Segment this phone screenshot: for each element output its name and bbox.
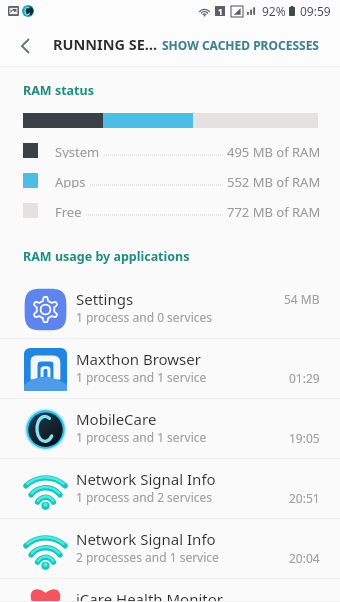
staticText: RAM usage by applications bbox=[23, 248, 190, 265]
staticText: 20:51 bbox=[289, 490, 320, 506]
button[interactable]: iCare Health Monitor bbox=[0, 579, 340, 602]
button[interactable]: Maxthon Browser bbox=[0, 339, 340, 399]
staticText: Network Signal Info bbox=[76, 529, 216, 549]
staticText: 1 process and 0 services bbox=[76, 309, 213, 325]
button[interactable]: Navigate up bbox=[13, 34, 37, 58]
staticText: Network Signal Info bbox=[76, 469, 216, 489]
staticText: 495 MB of RAM bbox=[227, 143, 321, 158]
staticText: 552 MB of RAM bbox=[227, 173, 321, 188]
staticText: 01:29 bbox=[289, 370, 320, 386]
staticText: 1 bbox=[218, 6, 223, 16]
button[interactable]: Settings bbox=[0, 279, 340, 339]
staticText: iCare Health Monitor bbox=[76, 589, 223, 602]
staticText: Free bbox=[55, 203, 82, 218]
button[interactable]: Network Signal Info bbox=[0, 519, 340, 579]
staticText: MobileCare bbox=[76, 409, 157, 429]
staticText: System bbox=[55, 143, 100, 158]
staticText: 772 MB of RAM bbox=[227, 203, 321, 218]
staticText: 20:04 bbox=[289, 550, 320, 566]
staticText: RUNNING SE… bbox=[53, 34, 158, 54]
button[interactable]: MobileCare bbox=[0, 399, 340, 459]
staticText: 19:05 bbox=[289, 430, 320, 446]
button[interactable]: SHOW CACHED PROCESSES bbox=[162, 37, 319, 53]
staticText: SHOW CACHED PROCESSES bbox=[162, 37, 319, 53]
staticText: 1 process and 1 service bbox=[76, 429, 207, 445]
staticText: 54 MB bbox=[284, 291, 320, 307]
staticText: Settings bbox=[76, 289, 134, 309]
button[interactable]: Network Signal Info bbox=[0, 459, 340, 519]
staticText: 92% bbox=[262, 3, 286, 19]
staticText: Maxthon Browser bbox=[76, 349, 201, 369]
staticText: 1 process and 2 services bbox=[76, 489, 213, 505]
staticText: Apps bbox=[55, 173, 86, 188]
staticText: RAM status bbox=[23, 82, 94, 99]
staticText: 2 processes and 1 service bbox=[76, 549, 219, 565]
staticText: 09:59 bbox=[300, 3, 331, 19]
staticText: 1 process and 1 service bbox=[76, 369, 207, 385]
